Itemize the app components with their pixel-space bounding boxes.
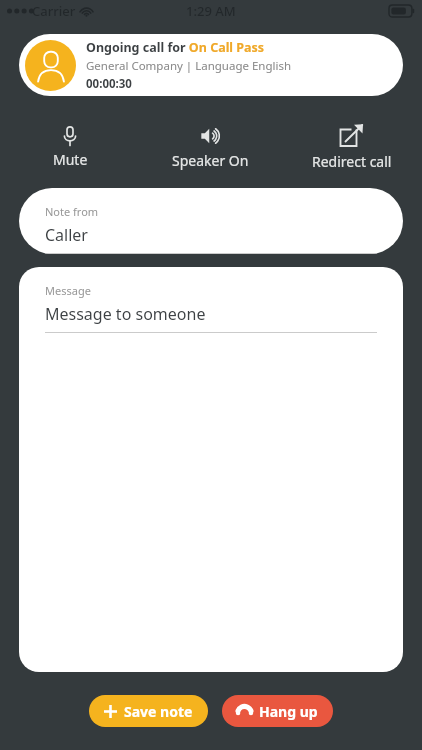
staticText: Redirect call: [312, 152, 392, 171]
staticText: Save note: [124, 702, 193, 721]
button[interactable]: Note from: [19, 188, 403, 254]
staticText: 1:29 AM: [186, 2, 236, 20]
button[interactable]: Hang up: [222, 695, 333, 727]
button[interactable]: Speaker On: [140, 118, 281, 176]
staticText: Message to someone: [45, 303, 206, 325]
staticText: Speaker On: [172, 151, 249, 170]
button[interactable]: Mute: [0, 118, 140, 176]
staticText: Caller: [45, 224, 88, 246]
staticText: Ongoing call for On Call Pass: [86, 39, 265, 56]
staticText: Carrier: [32, 2, 76, 20]
staticText: General Company | Language English: [86, 58, 292, 74]
button[interactable]: Ongoing call for On Call Pass: [19, 34, 403, 96]
button[interactable]: Redirect call: [281, 118, 422, 176]
button[interactable]: Message: [19, 267, 403, 672]
staticText: Note from: [45, 204, 99, 219]
button[interactable]: Save note: [89, 695, 208, 727]
staticText: 00:00:30: [86, 76, 132, 92]
staticText: Message: [45, 283, 91, 298]
staticText: Hang up: [259, 702, 318, 721]
staticText: Mute: [53, 150, 88, 169]
